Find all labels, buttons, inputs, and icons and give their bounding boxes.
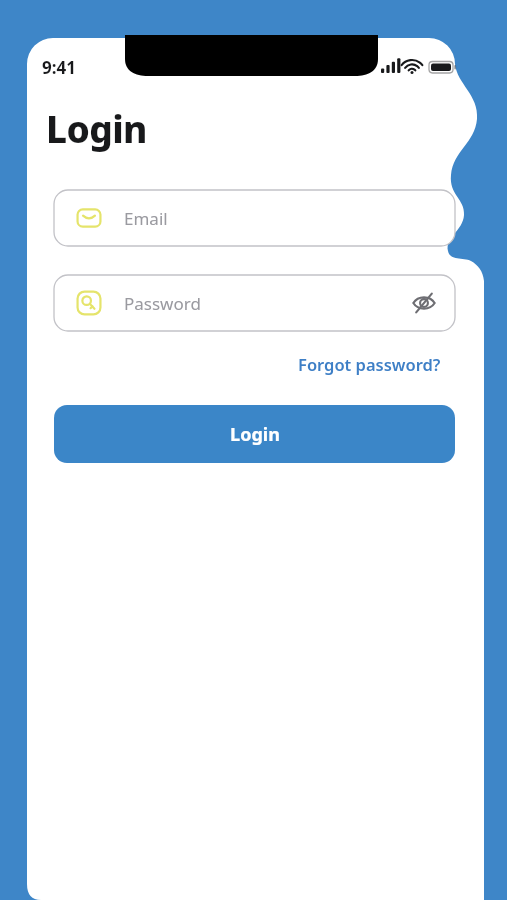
button[interactable]: Password <box>54 275 455 331</box>
staticText: Login <box>230 422 280 447</box>
button[interactable]: Login <box>54 405 455 463</box>
button[interactable]: Email <box>54 190 455 246</box>
staticText: Forgot password? <box>298 353 441 375</box>
button[interactable]: Show password <box>409 288 439 318</box>
staticText: Password <box>124 292 409 315</box>
staticText: Email <box>124 207 168 230</box>
staticText: 9:41 <box>42 56 76 79</box>
button[interactable]: Forgot password? <box>296 350 443 378</box>
staticText: Login <box>46 103 147 153</box>
